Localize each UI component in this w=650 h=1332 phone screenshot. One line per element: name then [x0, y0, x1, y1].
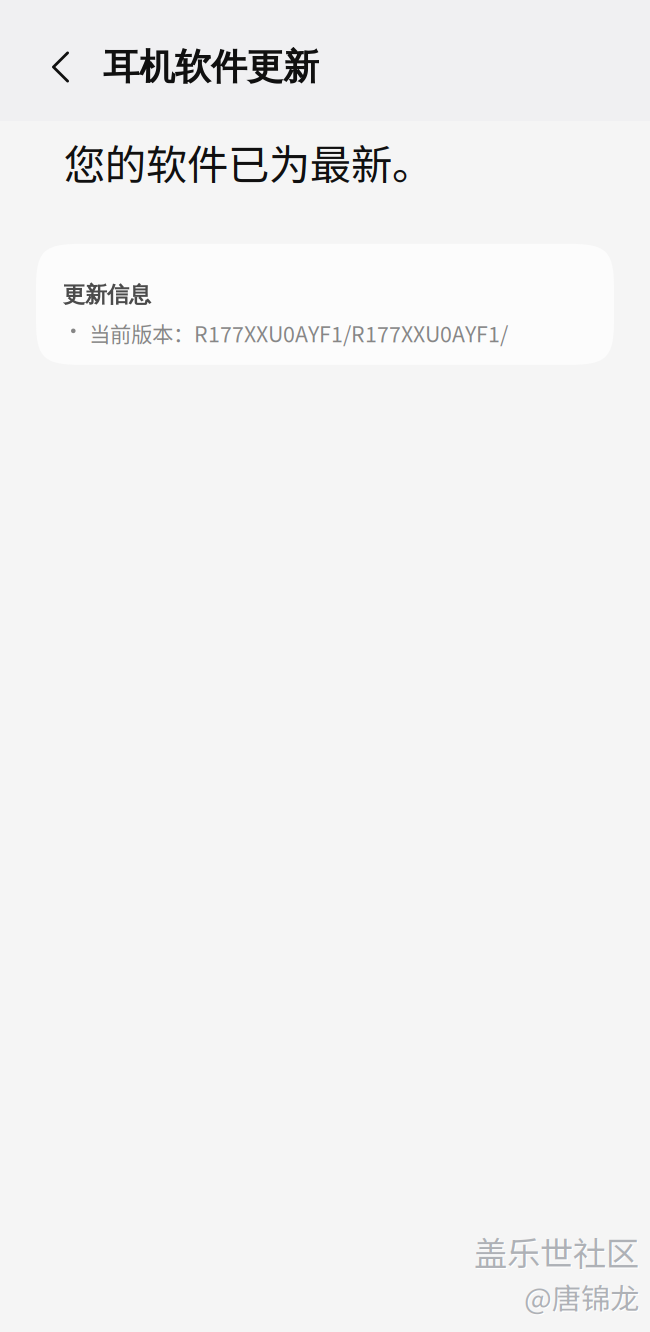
staticText: 盖乐世社区: [474, 1227, 639, 1276]
staticText: 您的软件已为最新。: [64, 132, 433, 192]
button[interactable]: Back: [0, 8, 103, 112]
staticText: 当前版本：R177XXU0AYF1/R177XXU0AYF1/: [89, 318, 508, 348]
staticText: 更新信息: [63, 281, 151, 309]
staticText: 耳机软件更新: [103, 44, 319, 90]
staticText: @唐锦龙: [525, 1276, 640, 1319]
staticText: 盖乐世社区: [475, 1228, 640, 1277]
staticText: @唐锦龙: [524, 1275, 639, 1318]
